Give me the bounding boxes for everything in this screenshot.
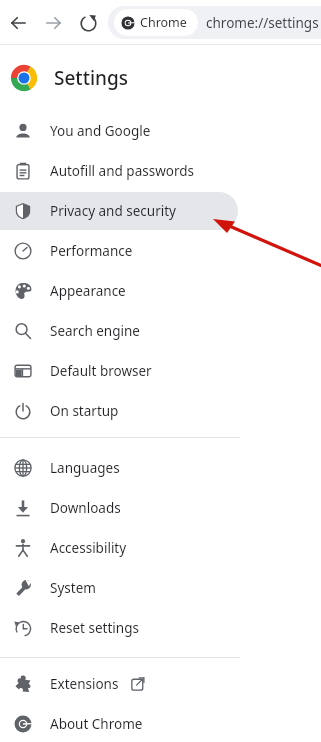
staticText: Reset settings	[50, 619, 139, 637]
button[interactable]: Back	[2, 7, 34, 39]
staticText: Performance	[50, 242, 133, 260]
staticText: chrome://settings	[206, 14, 319, 32]
button[interactable]: Extensions	[0, 665, 238, 703]
button[interactable]: Autofill and passwords	[0, 152, 238, 190]
staticText: Search engine	[50, 322, 140, 340]
button[interactable]: Default browser	[0, 352, 238, 390]
staticText: Downloads	[50, 499, 121, 517]
button[interactable]: Downloads	[0, 489, 238, 527]
staticText: Default browser	[50, 362, 152, 380]
button[interactable]: Reload	[72, 7, 104, 39]
button[interactable]: Chrome	[108, 6, 321, 39]
button[interactable]: Performance	[0, 232, 238, 270]
staticText: Languages	[50, 459, 120, 477]
button[interactable]: On startup	[0, 392, 238, 430]
button[interactable]: About Chrome	[0, 705, 238, 742]
button[interactable]: You and Google	[0, 112, 238, 150]
staticText: Chrome	[140, 14, 187, 31]
staticText: About Chrome	[50, 715, 143, 733]
button[interactable]: Languages	[0, 449, 238, 487]
button[interactable]: Accessibility	[0, 529, 238, 567]
staticText: Appearance	[50, 282, 126, 300]
staticText: System	[50, 579, 96, 597]
button[interactable]: System	[0, 569, 238, 607]
button[interactable]: Reset settings	[0, 609, 238, 647]
staticText: Autofill and passwords	[50, 162, 195, 180]
button[interactable]: Search engine	[0, 312, 238, 350]
button[interactable]: Privacy and security	[0, 192, 238, 230]
button[interactable]: Appearance	[0, 272, 238, 310]
staticText: Settings	[54, 65, 128, 91]
staticText: Privacy and security	[50, 202, 176, 220]
staticText: You and Google	[50, 122, 151, 140]
staticText: Extensions	[50, 675, 119, 693]
button[interactable]: Forward	[38, 7, 70, 39]
staticText: On startup	[50, 402, 119, 420]
staticText: Accessibility	[50, 539, 127, 557]
